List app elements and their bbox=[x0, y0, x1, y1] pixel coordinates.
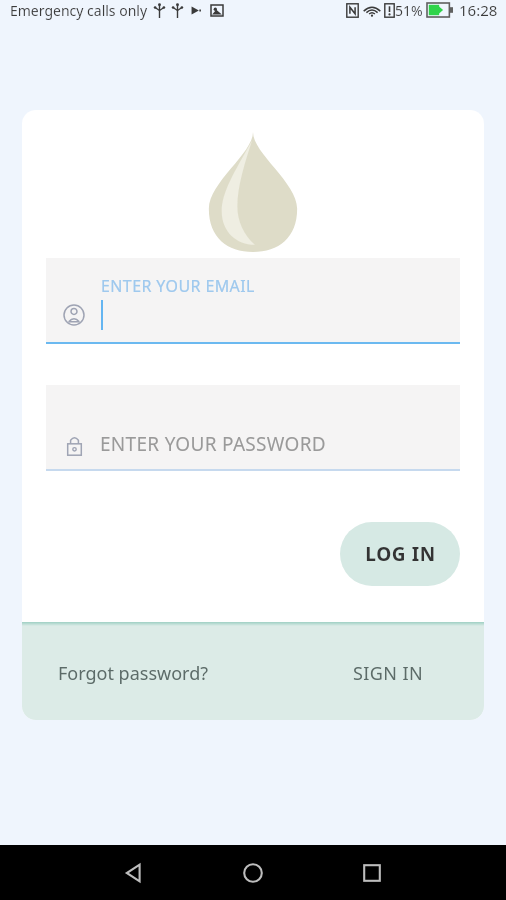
button[interactable]: Home bbox=[229, 849, 277, 897]
staticText: ENTER YOUR PASSWORD bbox=[100, 431, 327, 457]
staticText: LOG IN bbox=[365, 541, 436, 567]
staticText: 16:28 bbox=[459, 0, 498, 20]
staticText: 51% bbox=[395, 1, 423, 20]
button[interactable]: LOG IN bbox=[340, 522, 460, 586]
button[interactable]: ENTER YOUR PASSWORD bbox=[46, 385, 460, 469]
staticText: SIGN IN bbox=[353, 661, 424, 686]
button[interactable]: Forgot password? bbox=[52, 655, 215, 692]
button[interactable]: Back bbox=[110, 849, 158, 897]
button[interactable]: ENTER YOUR EMAIL bbox=[46, 258, 460, 342]
staticText: Forgot password? bbox=[58, 661, 209, 686]
button[interactable]: Recent apps bbox=[348, 849, 396, 897]
staticText: ENTER YOUR EMAIL bbox=[101, 275, 255, 297]
button[interactable]: SIGN IN bbox=[347, 655, 430, 692]
staticText: Emergency calls only bbox=[10, 1, 148, 20]
